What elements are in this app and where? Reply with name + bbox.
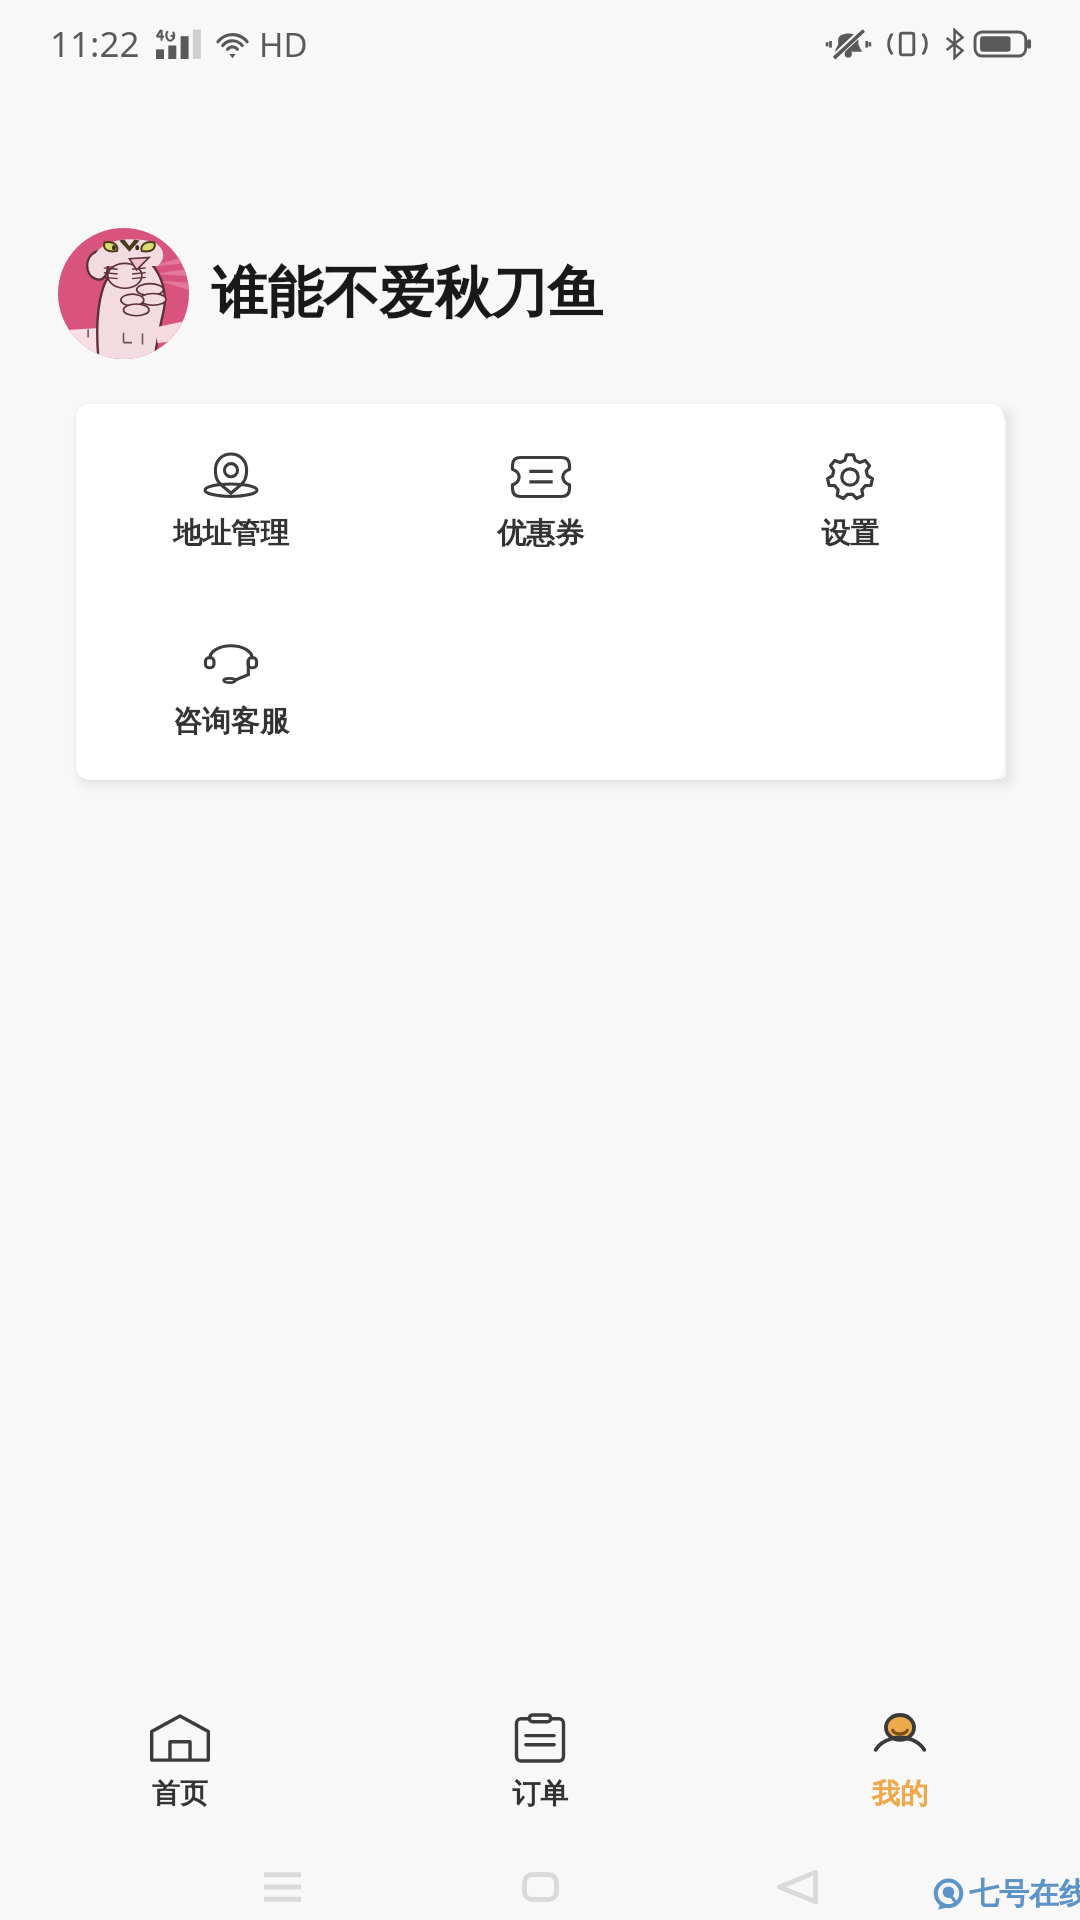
- staticText: HD: [259, 22, 308, 67]
- button[interactable]: Recents: [153, 1858, 411, 1916]
- staticText: 咨询客服: [173, 703, 289, 740]
- button[interactable]: 优惠券: [386, 404, 695, 592]
- button[interactable]: 首页: [0, 1692, 360, 1832]
- staticText: 11:22: [50, 20, 140, 68]
- staticText: 优惠券: [497, 515, 584, 552]
- staticText: 订单: [512, 1776, 568, 1811]
- button[interactable]: 地址管理: [76, 404, 386, 592]
- button[interactable]: 咨询客服: [76, 592, 386, 780]
- staticText: 地址管理: [173, 515, 289, 552]
- button[interactable]: Home: [411, 1858, 669, 1916]
- button[interactable]: 谁能不爱秋刀鱼: [0, 228, 1080, 359]
- button[interactable]: 订单: [360, 1692, 720, 1832]
- button[interactable]: 我的: [720, 1692, 1080, 1832]
- staticText: 我的: [872, 1776, 928, 1811]
- staticText: 七号在线: [969, 1875, 1080, 1913]
- staticText: 设置: [821, 515, 879, 552]
- staticText: 首页: [152, 1776, 208, 1811]
- button[interactable]: Back: [669, 1858, 927, 1916]
- button[interactable]: 设置: [695, 404, 1004, 592]
- staticText: 谁能不爱秋刀鱼: [211, 258, 603, 329]
